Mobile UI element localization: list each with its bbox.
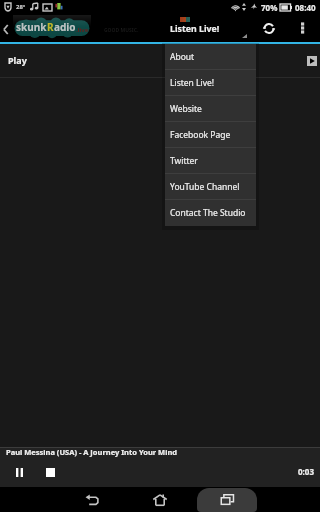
staticText: skunk: [16, 20, 47, 34]
staticText: 70%: [261, 2, 278, 13]
button[interactable]: Stop: [41, 465, 59, 479]
button[interactable]: Recent apps: [197, 488, 257, 512]
button[interactable]: YouTube Channel: [165, 174, 256, 200]
staticText: Website: [170, 103, 202, 115]
button[interactable]: Twitter: [165, 148, 256, 174]
button[interactable]: Home: [130, 487, 190, 512]
button[interactable]: Contact The Studio: [165, 200, 256, 226]
staticText: GOOD MUSIC.: [104, 27, 139, 34]
staticText: 0:03: [298, 466, 314, 477]
button[interactable]: Navigate up: [0, 14, 14, 42]
staticText: About: [170, 51, 195, 63]
staticText: Paul Messina (USA) - A Journey Into Your…: [6, 447, 177, 457]
button[interactable]: Website: [165, 96, 256, 122]
button[interactable]: Refresh: [258, 14, 280, 42]
button[interactable]: Pause: [10, 465, 28, 479]
staticText: Listen Live!: [170, 23, 220, 35]
staticText: 28°: [16, 3, 26, 11]
staticText: .live: [76, 26, 89, 34]
staticText: adio: [54, 20, 76, 34]
staticText: Play: [8, 54, 27, 66]
button[interactable]: About: [165, 44, 256, 70]
staticText: 08:40: [295, 2, 316, 13]
button[interactable]: Listen Live!: [168, 14, 246, 42]
button[interactable]: More options: [294, 14, 314, 42]
button[interactable]: Back: [62, 487, 122, 512]
staticText: Facebook Page: [170, 129, 231, 141]
staticText: Contact The Studio: [170, 207, 246, 219]
staticText: Listen Live!: [170, 77, 215, 89]
staticText: R: [47, 20, 54, 34]
staticText: YouTube Channel: [170, 181, 240, 193]
button[interactable]: Facebook Page: [165, 122, 256, 148]
button[interactable]: Play: [0, 44, 320, 77]
button[interactable]: Listen Live!: [165, 70, 256, 96]
staticText: Twitter: [170, 155, 198, 167]
